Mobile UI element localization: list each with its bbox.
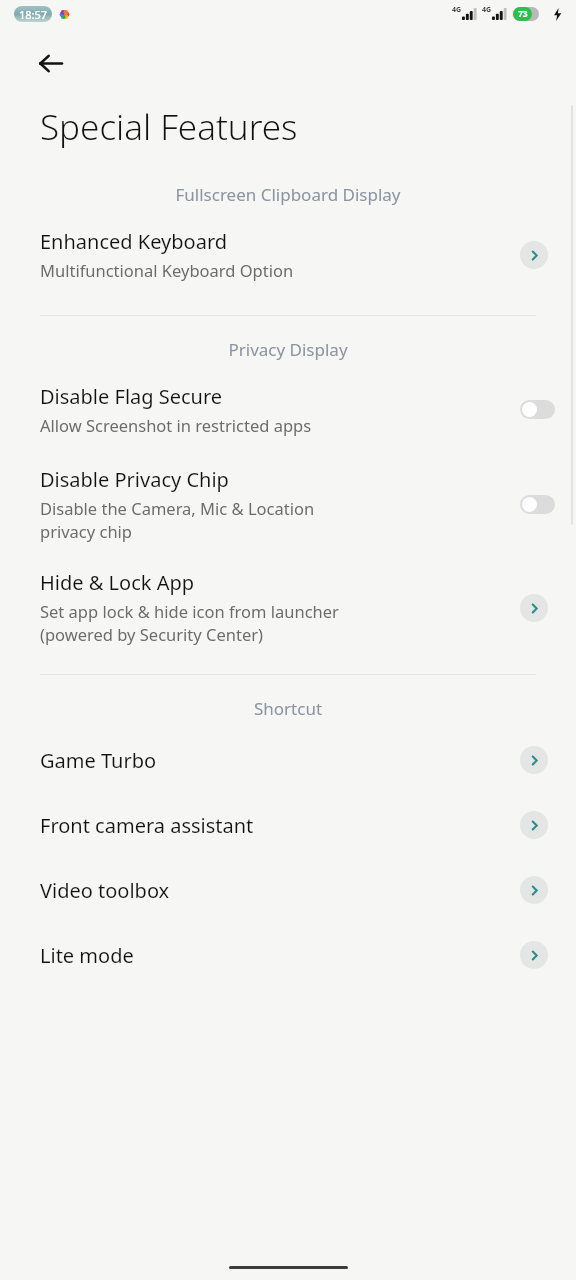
button[interactable]: Lite mode xyxy=(0,941,576,969)
staticText: Front camera assistant xyxy=(40,812,520,839)
staticText: Allow Screenshot in restricted apps xyxy=(40,414,312,436)
button[interactable]: Toggle Disable Flag Secure xyxy=(520,400,555,419)
staticText: 73 xyxy=(518,8,528,20)
staticText: Disable the Camera, Mic & Location priva… xyxy=(40,497,315,543)
button[interactable]: Toggle Disable Privacy Chip xyxy=(520,495,555,514)
button[interactable]: Game Turbo xyxy=(0,746,576,774)
staticText: Disable Privacy Chip xyxy=(40,466,229,493)
staticText: Lite mode xyxy=(40,942,520,969)
staticText: Multifunctional Keyboard Option xyxy=(40,259,294,281)
staticText: Set app lock & hide icon from launcher (… xyxy=(40,600,339,646)
staticText: Disable Flag Secure xyxy=(40,383,223,410)
button[interactable]: Front camera assistant xyxy=(0,811,576,839)
button[interactable]: Disable Privacy Chip xyxy=(0,466,576,543)
button[interactable]: Hide & Lock App xyxy=(0,569,576,646)
staticText: Game Turbo xyxy=(40,747,520,774)
staticText: 4G xyxy=(452,5,462,15)
staticText: Special Features xyxy=(40,103,298,151)
staticText: Shortcut xyxy=(0,697,576,720)
staticText: 18:57 xyxy=(19,7,48,22)
staticText: Fullscreen Clipboard Display xyxy=(0,183,576,206)
staticText: 4G xyxy=(482,5,492,15)
button[interactable]: Video toolbox xyxy=(0,876,576,904)
staticText: Hide & Lock App xyxy=(40,569,195,596)
button[interactable]: Enhanced Keyboard xyxy=(0,228,576,281)
staticText: Enhanced Keyboard xyxy=(40,228,228,255)
staticText: Video toolbox xyxy=(40,877,520,904)
button[interactable]: Back xyxy=(28,41,72,85)
button[interactable]: Disable Flag Secure xyxy=(0,383,576,436)
staticText: Privacy Display xyxy=(0,338,576,361)
